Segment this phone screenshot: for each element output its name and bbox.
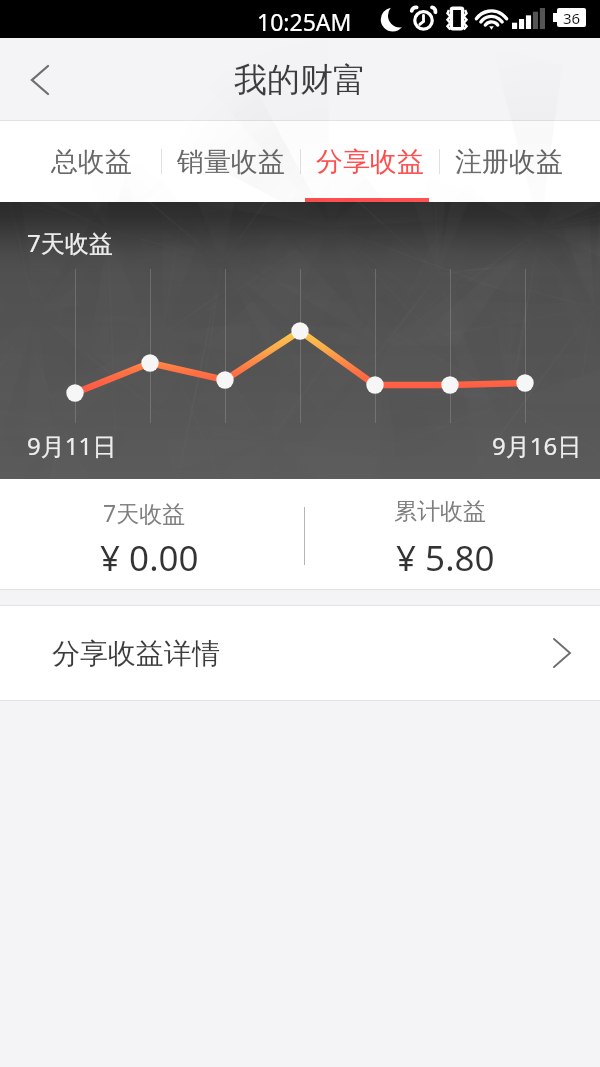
staticText: 总收益 [51, 145, 132, 179]
staticText: 7天收益 [27, 226, 113, 259]
staticText: ¥ 0.00 [100, 534, 199, 582]
button[interactable]: 注册收益 [439, 121, 578, 202]
staticText: 7天收益 [103, 497, 186, 528]
button[interactable]: 分享收益详情 [0, 606, 600, 700]
button[interactable]: 分享收益 [300, 121, 439, 202]
button[interactable]: 销量收益 [161, 121, 300, 202]
staticText: 36 [563, 8, 581, 27]
staticText: 累计收益 [394, 497, 486, 526]
staticText: 我的财富 [234, 59, 366, 101]
staticText: 10:25AM [257, 6, 352, 37]
staticText: 9月11日 [27, 429, 117, 462]
staticText: 分享收益详情 [52, 636, 220, 671]
button[interactable]: 总收益 [22, 121, 161, 202]
staticText: 注册收益 [455, 145, 563, 179]
staticText: 9月16日 [492, 429, 582, 462]
staticText: 销量收益 [177, 145, 285, 179]
staticText: ¥ 5.80 [396, 534, 495, 582]
button[interactable]: Back [0, 38, 78, 121]
staticText: 分享收益 [316, 145, 424, 179]
